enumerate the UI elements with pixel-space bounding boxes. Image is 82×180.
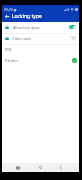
staticText: Locking type xyxy=(12,13,42,20)
staticText: Fake crash xyxy=(13,36,69,41)
button[interactable]: Home xyxy=(35,163,45,172)
button[interactable]: Allow lock apps xyxy=(2,22,79,32)
button[interactable]: Navigate up xyxy=(2,11,12,22)
button[interactable]: Toggle xyxy=(69,36,76,40)
button[interactable]: Back xyxy=(55,163,65,172)
staticText: Pattern xyxy=(5,58,72,63)
button[interactable]: Fake crash xyxy=(2,33,79,43)
button[interactable]: Recent apps xyxy=(13,163,23,172)
staticText: Allow lock apps xyxy=(13,25,69,30)
staticText: PIN xyxy=(5,47,77,52)
button[interactable]: PIN xyxy=(2,45,79,54)
button[interactable]: Toggle xyxy=(69,25,76,29)
button[interactable]: Pattern xyxy=(2,54,79,67)
staticText: 09:25 ● xyxy=(4,7,17,12)
